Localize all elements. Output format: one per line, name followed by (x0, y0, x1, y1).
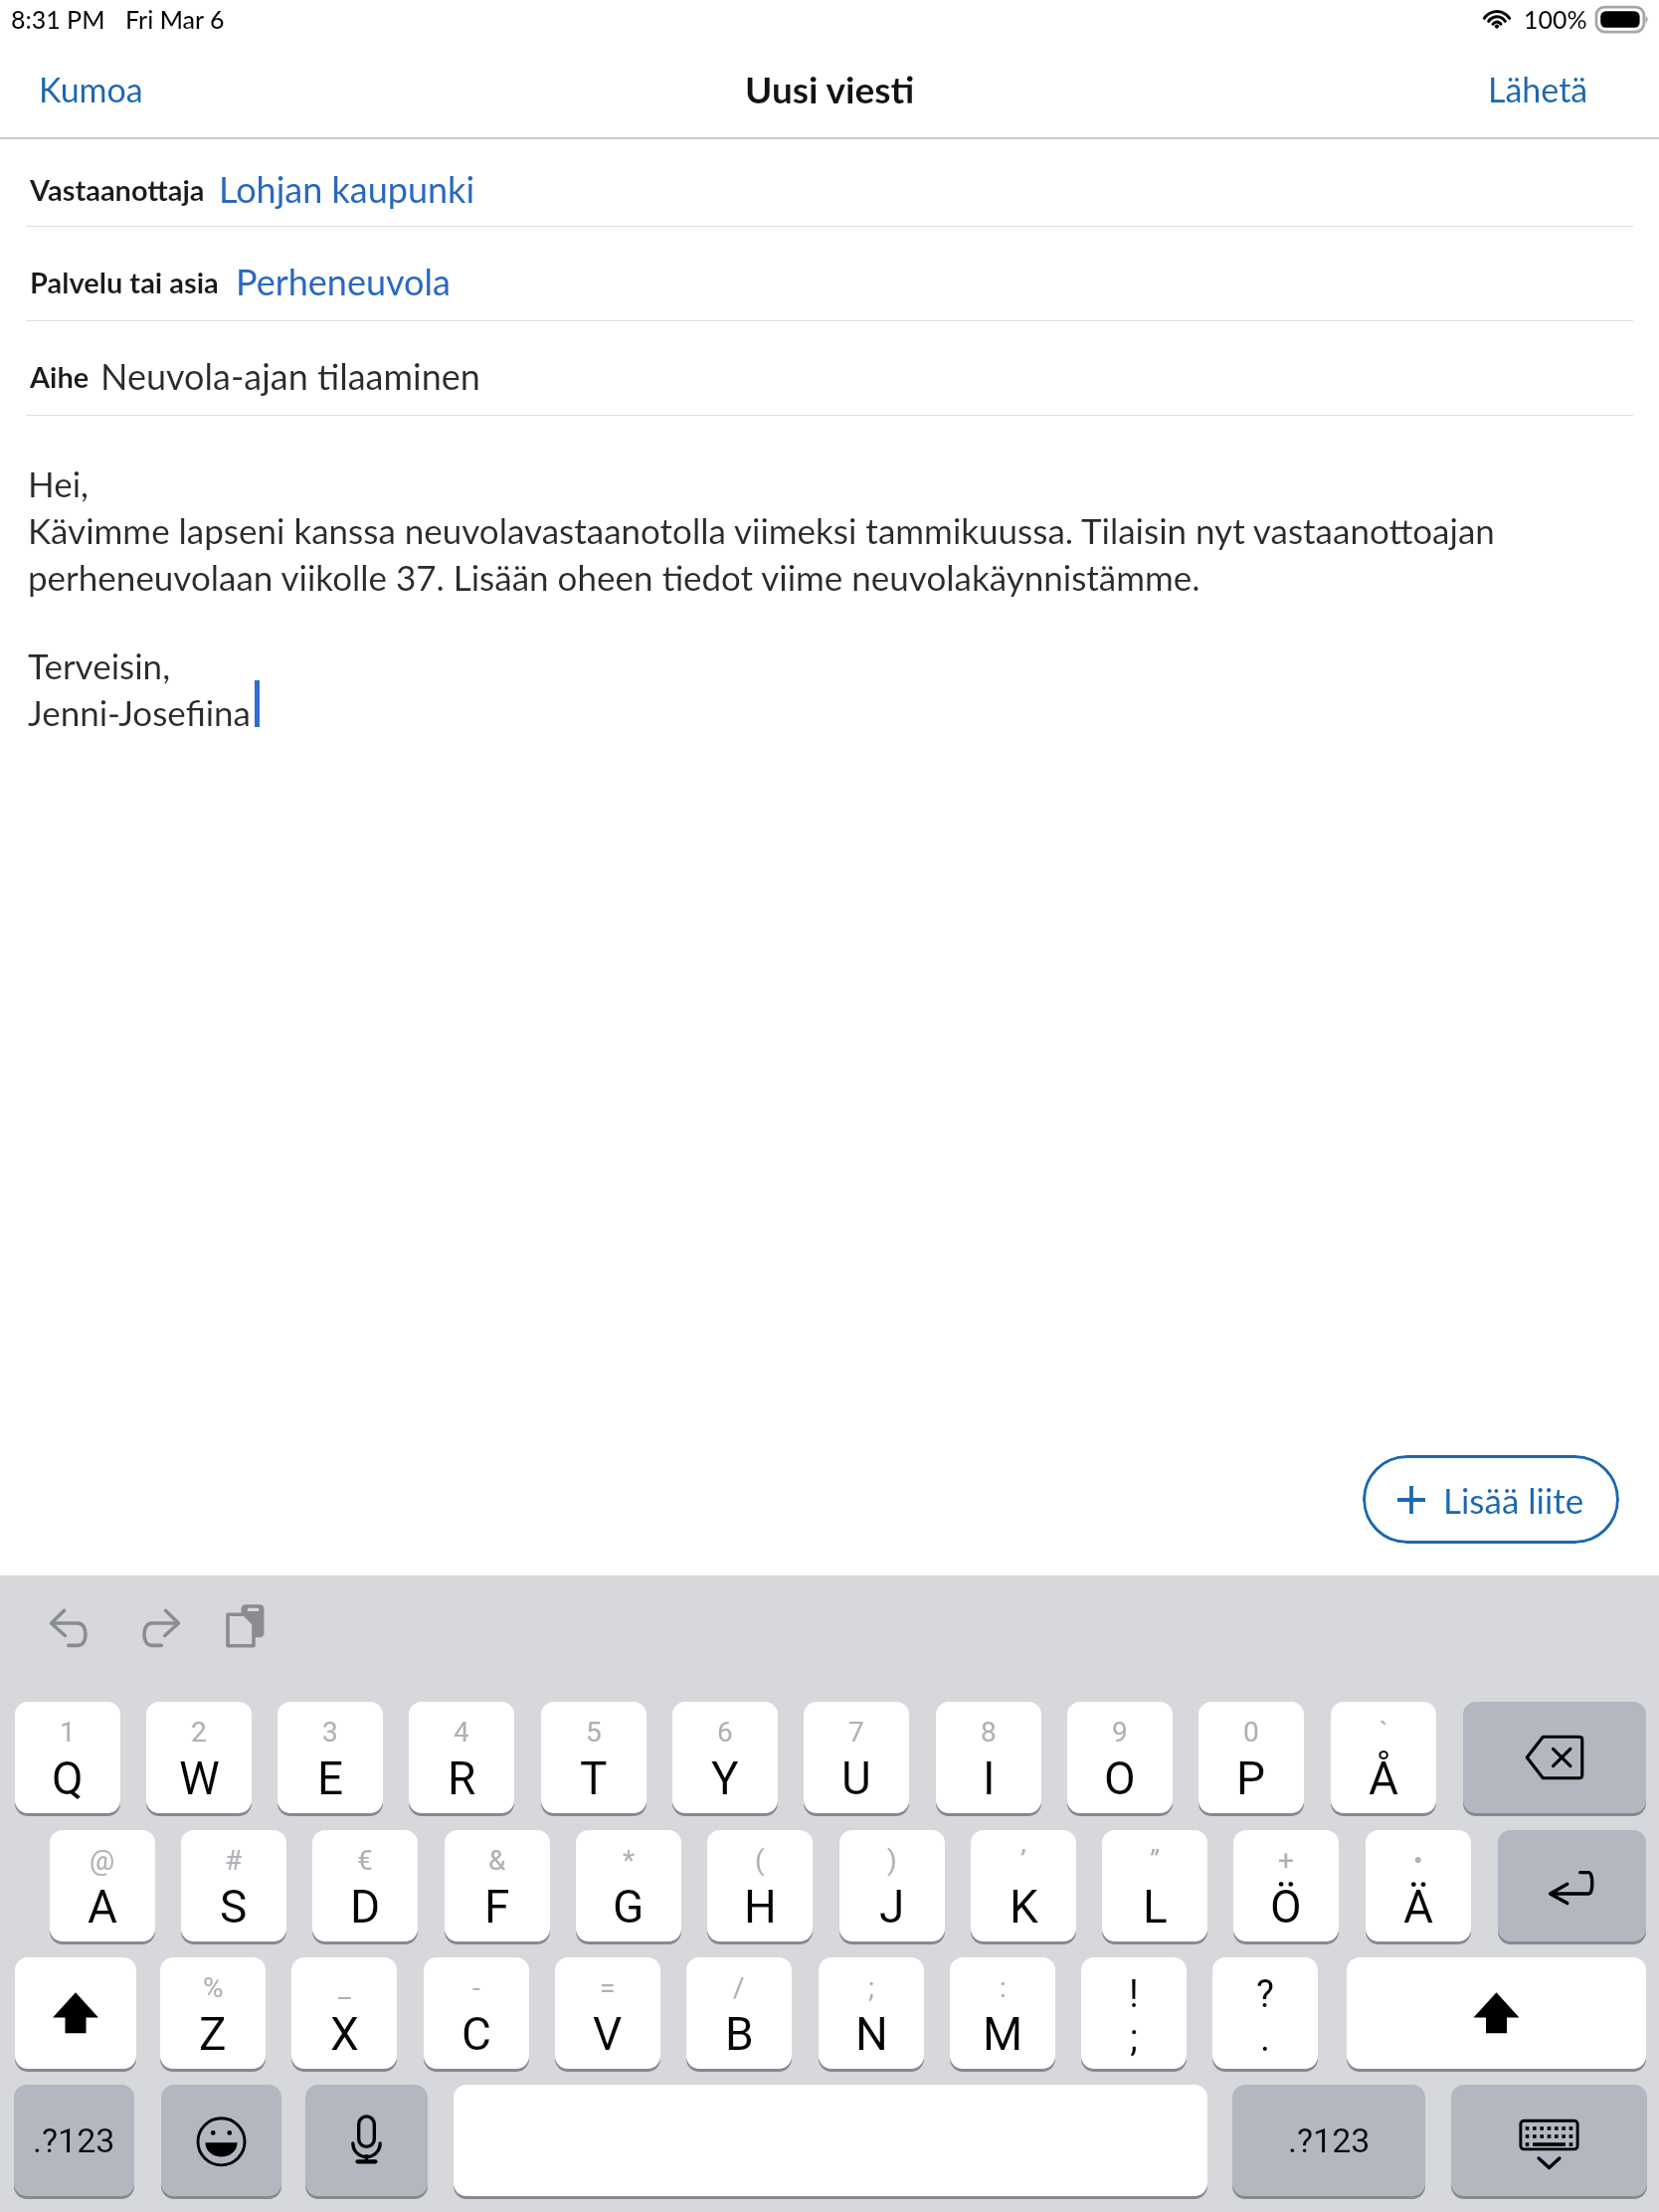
staticText: Ä (1403, 1880, 1434, 1934)
button[interactable]: + (1233, 1830, 1339, 1941)
button[interactable]: 3 (277, 1702, 383, 1813)
button[interactable]: .?123 (1232, 2085, 1425, 2196)
button[interactable]: 0 (1198, 1702, 1304, 1813)
staticText: 6 (717, 1716, 733, 1749)
button[interactable]: Dictation (305, 2085, 428, 2196)
button[interactable] (0, 320, 1659, 415)
button[interactable]: ` (1331, 1702, 1436, 1813)
staticText: Fri Mar 6 (125, 4, 225, 34)
staticText: ; (1130, 2016, 1139, 2061)
button[interactable]: • (1366, 1830, 1471, 1941)
button[interactable]: : (950, 1957, 1055, 2069)
staticText: @ (90, 1844, 115, 1877)
button[interactable]: * (576, 1830, 681, 1941)
button[interactable]: 9 (1067, 1702, 1173, 1813)
staticText: Z (199, 2007, 227, 2061)
button[interactable] (0, 226, 1659, 320)
staticText: Perheneuvola (236, 260, 451, 302)
staticText: * (623, 1844, 636, 1877)
staticText: W (179, 1751, 220, 1805)
staticText: L (1143, 1880, 1168, 1934)
button[interactable]: = (555, 1957, 660, 2069)
staticText: ; (868, 1971, 874, 2004)
button[interactable]: / (686, 1957, 792, 2069)
button[interactable]: ’ (971, 1830, 1076, 1941)
button[interactable]: Redo (134, 1603, 186, 1655)
staticText: J (879, 1880, 905, 1934)
staticText: % (203, 1971, 224, 2004)
button[interactable]: ” (1102, 1830, 1207, 1941)
staticText: H (744, 1880, 777, 1934)
button[interactable]: 8 (936, 1702, 1041, 1813)
button[interactable]: Undo (44, 1603, 95, 1655)
button[interactable]: ) (839, 1830, 945, 1941)
staticText: ( (755, 1844, 765, 1877)
staticText: _ (338, 1971, 351, 2004)
staticText: Vastaanottaja (30, 172, 205, 207)
button[interactable]: ? (1212, 1957, 1318, 2069)
button[interactable]: Emoji (161, 2085, 281, 2196)
button[interactable]: Shift (15, 1957, 136, 2069)
staticText: Q (52, 1751, 84, 1805)
button[interactable]: 5 (541, 1702, 646, 1813)
staticText: K (1010, 1880, 1038, 1934)
button[interactable]: Lähetä (1458, 44, 1659, 133)
staticText: ! (1129, 1972, 1139, 2017)
button[interactable]: # (181, 1830, 286, 1941)
staticText: 2 (191, 1716, 207, 1749)
staticText: Palvelu tai asia (30, 265, 219, 299)
staticText: 8:31 PM (11, 4, 105, 34)
button[interactable]: Return (1498, 1830, 1646, 1941)
button[interactable]: Hide keyboard (1451, 2085, 1647, 2196)
staticText: C (461, 2007, 491, 2061)
button[interactable]: 6 (672, 1702, 778, 1813)
button[interactable]: ; (819, 1957, 924, 2069)
button[interactable] (0, 137, 1659, 226)
button[interactable]: .?123 (14, 2085, 134, 2196)
staticText: F (484, 1880, 510, 1934)
staticText: T (580, 1751, 608, 1805)
button[interactable]: @ (50, 1830, 155, 1941)
staticText: S (220, 1880, 248, 1934)
staticText: M (983, 2007, 1023, 2061)
button[interactable]: ( (707, 1830, 813, 1941)
staticText: ? (1256, 1972, 1274, 2017)
button[interactable]: _ (291, 1957, 397, 2069)
button[interactable]: 7 (804, 1702, 909, 1813)
button[interactable]: - (424, 1957, 529, 2069)
button[interactable]: Viestin sisältö (0, 416, 1659, 1455)
button[interactable]: € (312, 1830, 418, 1941)
staticText: 5 (586, 1716, 602, 1749)
button[interactable]: Lisää liite (1363, 1455, 1619, 1544)
staticText: = (600, 1971, 616, 2004)
staticText: Kumoa (39, 69, 143, 109)
button[interactable]: Backspace (1463, 1702, 1646, 1813)
button[interactable]: 4 (409, 1702, 514, 1813)
button[interactable]: & (445, 1830, 550, 1941)
button[interactable]: 1 (15, 1702, 120, 1813)
staticText: G (613, 1880, 645, 1934)
staticText: 7 (848, 1716, 864, 1749)
button[interactable]: % (160, 1957, 266, 2069)
button[interactable]: 2 (146, 1702, 252, 1813)
staticText: . (1260, 2016, 1271, 2061)
staticText: Lisää liite (1443, 1479, 1584, 1521)
button[interactable]: ! (1081, 1957, 1187, 2069)
staticText: Lähetä (1488, 69, 1588, 109)
staticText: D (350, 1880, 381, 1934)
staticText: 9 (1112, 1716, 1128, 1749)
staticText: : (1000, 1971, 1007, 2004)
staticText: ” (1150, 1844, 1161, 1877)
staticText: .?123 (1288, 2120, 1371, 2160)
button[interactable]: Kumoa (0, 44, 173, 133)
staticText: 4 (454, 1716, 469, 1749)
staticText: O (1104, 1751, 1136, 1805)
staticText: R (448, 1751, 476, 1805)
staticText: + (1278, 1844, 1294, 1877)
staticText: / (733, 1971, 745, 2004)
button[interactable]: Paste (224, 1600, 274, 1650)
staticText: B (725, 2007, 754, 2061)
staticText: V (593, 2007, 623, 2061)
button[interactable]: Shift (1347, 1957, 1646, 2069)
